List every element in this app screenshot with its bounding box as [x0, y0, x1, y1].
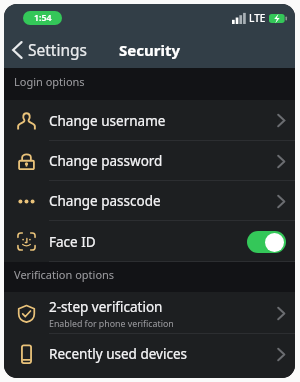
button[interactable]: Change passcode	[4, 181, 295, 221]
button[interactable]: Change username	[4, 100, 295, 141]
button[interactable]: Change password	[4, 141, 295, 181]
staticText: Login options	[14, 74, 85, 89]
staticText: Enabled for phone verification	[49, 318, 174, 330]
staticText: Security	[119, 40, 180, 60]
staticText: Recently used devices	[49, 345, 187, 363]
button[interactable]: Settings	[4, 35, 93, 64]
staticText: LTE	[249, 11, 266, 25]
button[interactable]: Face ID toggle	[247, 231, 286, 253]
button[interactable]: 2-step verification	[4, 292, 295, 334]
staticText: Change username	[49, 112, 166, 130]
staticText: Change password	[49, 152, 163, 170]
staticText: Change passcode	[49, 192, 161, 210]
staticText: Verification options	[14, 267, 115, 282]
button[interactable]: Recently used devices	[4, 334, 295, 374]
staticText: Face ID	[49, 233, 247, 251]
button[interactable]: Face ID	[4, 221, 295, 262]
staticText: 2-step verification	[49, 298, 163, 316]
staticText: 1:54	[34, 12, 52, 24]
staticText: Settings	[28, 39, 87, 60]
